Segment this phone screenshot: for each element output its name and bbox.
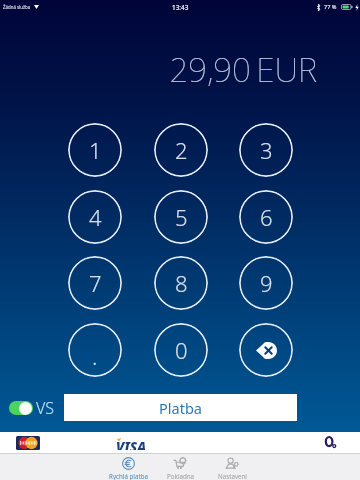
staticText: 77 % (324, 3, 337, 11)
staticText: 5 (175, 202, 188, 232)
staticText: VISA (116, 438, 146, 450)
button[interactable]: Platba (64, 394, 297, 421)
staticText: 4 (89, 202, 102, 232)
button[interactable]: 7 (68, 256, 122, 310)
button[interactable]: Rychlá platba (102, 453, 154, 480)
staticText: Nastavení (218, 472, 247, 480)
button[interactable]: 6 (239, 190, 293, 244)
staticText: Platba (159, 398, 202, 418)
button[interactable]: 9 (239, 256, 293, 310)
staticText: 2 (175, 135, 188, 165)
staticText: 13:43 (172, 3, 189, 12)
staticText: 6 (260, 202, 273, 232)
button[interactable]: Delete (239, 323, 293, 377)
button[interactable]: 0 (154, 323, 208, 377)
staticText: Žádná služba (3, 4, 31, 10)
staticText: 9 (260, 268, 273, 298)
staticText: 8 (175, 268, 188, 298)
staticText: 3 (260, 135, 273, 165)
staticText: Pokladna (167, 472, 194, 480)
button[interactable]: Pokladna (154, 453, 206, 480)
button[interactable]: 2 (154, 123, 208, 177)
button[interactable]: 8 (154, 256, 208, 310)
staticText: VS (36, 397, 55, 419)
button[interactable]: 5 (154, 190, 208, 244)
button[interactable]: . (68, 323, 122, 377)
staticText: Rychlá platba (109, 472, 148, 480)
button[interactable]: 4 (68, 190, 122, 244)
button[interactable]: 1 (68, 123, 122, 177)
button[interactable]: 3 (239, 123, 293, 177)
staticText: 0 (175, 335, 188, 365)
button[interactable]: VS (9, 397, 55, 419)
button[interactable]: Nastavení (206, 453, 258, 480)
staticText: . (92, 341, 98, 371)
staticText: 7 (89, 268, 102, 298)
staticText: 29,90 EUR (0, 47, 317, 92)
staticText: 1 (89, 135, 102, 165)
